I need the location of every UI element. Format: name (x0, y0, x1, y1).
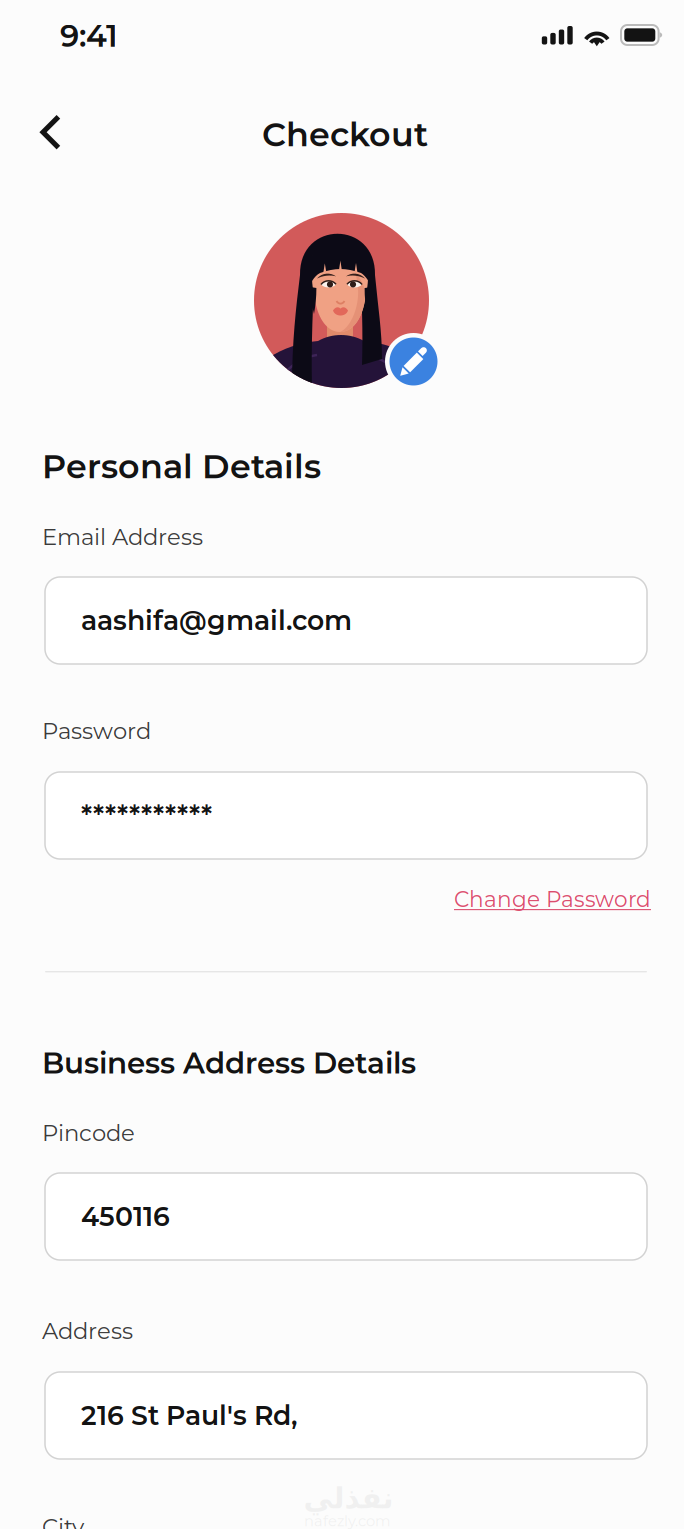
button[interactable]: Back (18, 98, 83, 166)
staticText: City (42, 1513, 84, 1529)
staticText: *********** (81, 799, 212, 832)
staticText: Address (42, 1317, 133, 1345)
staticText: aashifa@gmail.com (81, 604, 352, 637)
staticText: Password (42, 717, 151, 745)
button[interactable]: Change Password (454, 886, 651, 912)
staticText: Pincode (42, 1119, 135, 1147)
staticText: 9:41 (60, 17, 118, 54)
button[interactable]: aashifa@gmail.com (45, 577, 647, 664)
staticText: نفذلي (303, 1481, 393, 1515)
staticText: Change Password (454, 886, 651, 912)
staticText: Checkout (262, 114, 428, 155)
staticText: 450116 (81, 1200, 170, 1233)
button[interactable]: *********** (45, 772, 647, 859)
button[interactable]: Edit profile picture (385, 333, 442, 390)
button[interactable]: 450116 (45, 1173, 647, 1260)
staticText: Personal Details (42, 446, 321, 487)
staticText: Email Address (42, 523, 203, 551)
staticText: Business Address Details (42, 1045, 416, 1081)
staticText: 216 St Paul's Rd, (81, 1399, 298, 1432)
staticText: nafezly.com (304, 1512, 391, 1529)
button[interactable]: 216 St Paul's Rd, (45, 1372, 647, 1459)
